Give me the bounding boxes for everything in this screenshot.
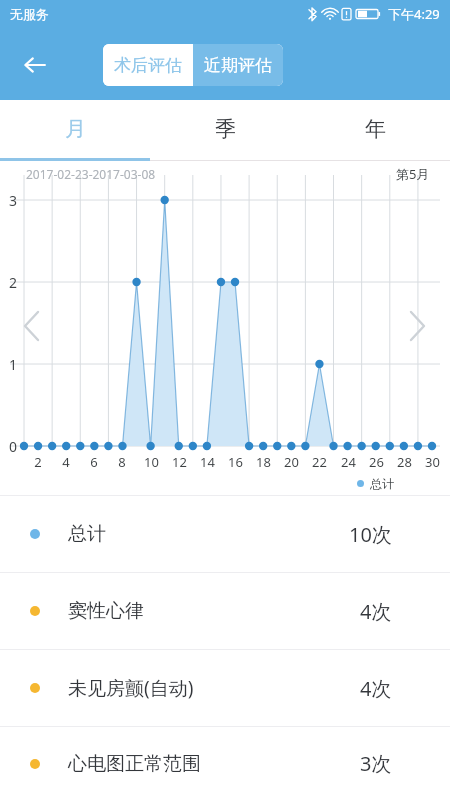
staticText: 18 [256,453,271,471]
staticText: 3次 [360,750,392,777]
staticText: 季 [215,116,236,142]
staticText: 22 [312,453,327,471]
staticText: 2 [9,273,18,292]
staticText: 30 [425,453,440,471]
staticText: 2017-02-23-2017-03-08 [26,166,156,182]
staticText: 20 [284,453,299,471]
staticText: 26 [369,453,384,471]
button[interactable]: Back [12,42,58,88]
staticText: 总计 [370,476,394,491]
staticText: 14 [200,453,215,471]
staticText: 近期评估 [204,55,272,76]
button[interactable]: 月 [0,100,150,158]
button[interactable]: 术后评估 [103,44,193,86]
staticText: 无服务 [10,6,49,22]
staticText: 4次 [360,598,392,625]
staticText: 16 [228,453,243,471]
staticText: 术后评估 [114,55,182,76]
staticText: 2 [34,453,42,471]
staticText: 心电图正常范围 [68,752,201,776]
staticText: 4 [62,453,70,471]
staticText: 未见房颤(自动) [68,675,194,701]
staticText: 28 [397,453,412,471]
staticText: 10 [144,453,159,471]
staticText: 窦性心律 [68,599,144,623]
staticText: 4次 [360,675,392,702]
staticText: 3 [9,191,18,210]
button[interactable]: 季 [150,100,300,158]
staticText: 10次 [349,521,392,548]
staticText: 1 [9,355,18,374]
staticText: 0 [9,437,18,456]
button[interactable]: 心电图正常范围 [0,727,450,800]
button[interactable]: 年 [300,100,450,158]
staticText: 第5月 [396,165,430,183]
staticText: 月 [65,116,86,142]
button[interactable]: 未见房颤(自动) [0,650,450,726]
button[interactable]: 总计 [0,496,450,572]
staticText: 总计 [68,522,106,546]
staticText: 年 [365,116,386,142]
staticText: 6 [90,453,98,471]
button[interactable]: 窦性心律 [0,573,450,649]
staticText: 12 [172,453,187,471]
button[interactable]: 近期评估 [193,44,283,86]
staticText: 8 [118,453,126,471]
staticText: 下午4:29 [388,5,440,23]
staticText: 24 [341,453,356,471]
